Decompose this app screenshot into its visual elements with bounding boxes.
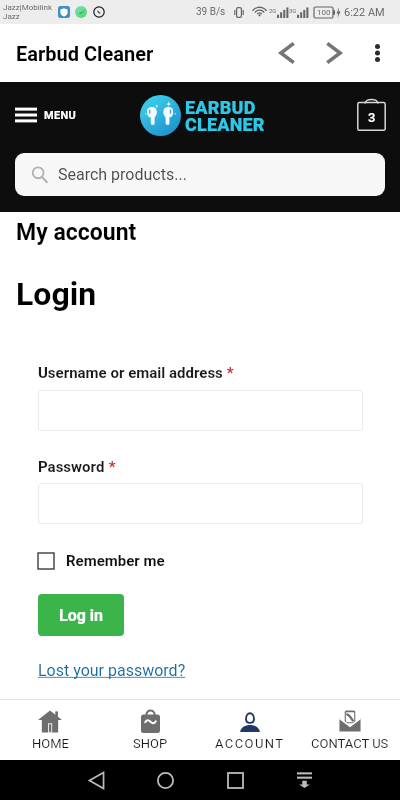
staticText: Login: [16, 275, 97, 313]
staticText: 3: [368, 110, 376, 125]
button[interactable]: SHOP: [100, 700, 200, 760]
button[interactable]: Recent apps: [217, 762, 253, 798]
staticText: HOME: [32, 736, 69, 751]
staticText: *: [223, 364, 234, 382]
button[interactable]: CONTACT US: [300, 700, 400, 760]
staticText: Search products...: [58, 165, 187, 184]
staticText: *: [105, 458, 116, 476]
staticText: Username or email address: [38, 364, 223, 382]
button[interactable]: Back: [78, 762, 114, 798]
staticText: MENU: [44, 109, 77, 122]
staticText: ACCOUNT: [215, 736, 285, 751]
button[interactable]: Cart: [353, 96, 389, 132]
button[interactable]: More options: [360, 36, 394, 70]
button[interactable]: Home: [147, 762, 183, 798]
staticText: Password: [38, 458, 105, 476]
staticText: Jazz: [3, 12, 20, 21]
button[interactable]: Back: [266, 32, 308, 74]
button[interactable]: Remember me: [38, 552, 165, 570]
staticText: Remember me: [66, 552, 165, 570]
staticText: 3G: [289, 7, 297, 14]
button[interactable]: ACCOUNT: [200, 700, 300, 760]
staticText: My account: [16, 219, 137, 246]
staticText: 6:22 AM: [344, 6, 385, 19]
staticText: Earbud Cleaner: [16, 42, 154, 65]
staticText: EARBUD CLEANER: [185, 97, 265, 135]
staticText: SHOP: [133, 736, 168, 751]
button[interactable]: Hide navigation bar: [286, 762, 322, 798]
staticText: Log in: [59, 606, 104, 625]
button[interactable]: HOME: [0, 700, 100, 760]
button[interactable]: [38, 483, 363, 524]
button[interactable]: Forward: [313, 32, 355, 74]
button[interactable]: MENU: [15, 108, 77, 122]
staticText: 39 B/s: [196, 6, 226, 18]
button[interactable]: Search products...: [15, 153, 385, 196]
button[interactable]: [38, 390, 363, 431]
staticText: 2G: [269, 7, 277, 14]
staticText: 100: [317, 8, 331, 17]
button[interactable]: Lost your password?: [38, 661, 186, 680]
button[interactable]: Log in: [38, 594, 124, 636]
staticText: Jazz|Mobilink: [3, 3, 53, 12]
staticText: CONTACT US: [311, 736, 389, 751]
